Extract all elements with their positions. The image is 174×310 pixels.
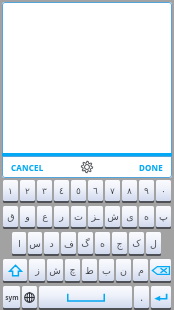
staticText: sym <box>5 293 19 302</box>
button[interactable]: ف <box>61 232 76 256</box>
button[interactable]: ٨ <box>122 180 137 203</box>
button[interactable] <box>39 286 132 310</box>
staticText: چ <box>69 265 76 276</box>
button[interactable]: ٩ <box>139 180 154 203</box>
staticText: ط <box>85 265 94 276</box>
staticText: ٧ <box>110 186 115 196</box>
staticText: ٨ <box>127 186 132 196</box>
button[interactable]: ٠ <box>156 180 171 203</box>
button[interactable]: ز <box>29 259 45 283</box>
staticText: گ <box>81 238 90 249</box>
staticText: ١ <box>8 186 13 196</box>
staticText: ا <box>18 238 21 249</box>
staticText: پ <box>159 211 168 222</box>
staticText: ز <box>35 265 40 276</box>
button[interactable]: ه <box>95 232 110 256</box>
staticText: م <box>138 265 144 276</box>
button[interactable]: ل <box>146 232 161 256</box>
staticText: ک <box>132 238 141 249</box>
staticText: س <box>29 238 41 249</box>
button[interactable]: م <box>133 259 148 283</box>
staticText: ٦ <box>93 186 98 196</box>
button[interactable]: ٧ <box>105 180 120 203</box>
staticText: ه <box>100 238 105 249</box>
button[interactable]: ـز <box>88 206 103 229</box>
button[interactable]: ١ <box>3 180 18 203</box>
button[interactable] <box>22 286 37 310</box>
button[interactable]: س <box>28 232 42 256</box>
button[interactable] <box>3 259 27 283</box>
button[interactable]: ج <box>112 232 127 256</box>
button[interactable]: ط <box>82 259 97 283</box>
staticText: ـز <box>91 211 100 222</box>
staticText: ج <box>116 238 123 249</box>
button[interactable]: ن <box>116 259 131 283</box>
staticText: ش <box>107 211 119 222</box>
staticText: ه <box>144 211 149 222</box>
button[interactable]: ٢ <box>20 180 35 203</box>
staticText: ٤ <box>59 186 64 196</box>
staticText: DONE <box>139 162 163 173</box>
staticText: ی <box>126 211 134 222</box>
staticText: ق <box>7 211 15 222</box>
button[interactable]: CANCEL <box>2 156 74 178</box>
button[interactable]: ب <box>99 259 114 283</box>
button[interactable] <box>151 286 171 310</box>
staticText: . <box>140 290 143 304</box>
button[interactable]: sym <box>3 286 20 310</box>
button[interactable]: ک <box>129 232 144 256</box>
staticText: ر <box>59 211 64 222</box>
button[interactable]: ا <box>12 232 26 256</box>
button[interactable]: ت <box>71 206 86 229</box>
button[interactable]: . <box>134 286 149 310</box>
staticText: د <box>49 238 54 249</box>
button[interactable]: گ <box>78 232 93 256</box>
staticText: ٢ <box>25 186 30 196</box>
staticText: CANCEL <box>11 162 44 173</box>
button[interactable]: ش <box>47 259 63 283</box>
button[interactable]: ق <box>3 206 18 229</box>
button[interactable]: ش <box>105 206 120 229</box>
staticText: ش <box>49 265 61 276</box>
button[interactable]: ٥ <box>71 180 86 203</box>
button[interactable]: ع <box>37 206 52 229</box>
button[interactable]: ٤ <box>54 180 69 203</box>
button[interactable]: DONE <box>100 156 172 178</box>
staticText: ٣ <box>42 186 47 196</box>
button[interactable]: د <box>44 232 59 256</box>
staticText: ٥ <box>76 186 81 196</box>
button[interactable]: ر <box>54 206 69 229</box>
button[interactable]: ی <box>122 206 137 229</box>
button[interactable]: ه <box>139 206 154 229</box>
staticText: ع <box>42 211 48 222</box>
staticText: ف <box>64 238 74 249</box>
staticText: و <box>25 211 30 222</box>
button[interactable]: Keyboard settings <box>74 156 100 178</box>
staticText: ن <box>120 265 127 276</box>
staticText: ٩ <box>144 186 149 196</box>
staticText: ت <box>74 211 83 222</box>
staticText: ٠ <box>161 186 166 196</box>
button[interactable] <box>150 259 171 283</box>
button[interactable]: چ <box>65 259 80 283</box>
staticText: ل <box>150 238 157 249</box>
button[interactable]: ٦ <box>88 180 103 203</box>
staticText: ب <box>102 265 111 276</box>
button[interactable]: و <box>20 206 35 229</box>
button[interactable]: ٣ <box>37 180 52 203</box>
button[interactable]: پ <box>156 206 171 229</box>
